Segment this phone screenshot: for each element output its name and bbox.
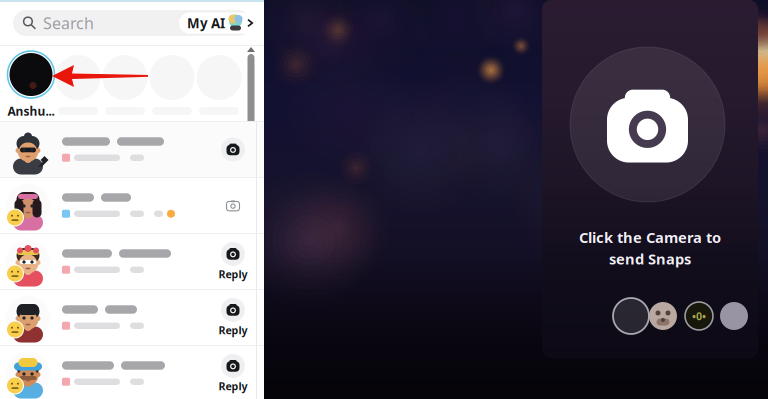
button[interactable]: Reply [0,234,264,289]
button[interactable]: Reply with a snap [218,298,248,337]
staticText: Reply [218,379,247,393]
button[interactable]: Send a snap [218,193,248,217]
button[interactable]: Lens 3 [720,302,748,330]
staticText: Anshu... [7,103,54,119]
button[interactable]: My AI [179,12,260,33]
button[interactable]: Open camera [570,47,725,202]
staticText: •0• [692,309,706,323]
button[interactable]: Search [13,10,163,36]
button[interactable]: Reply with a snap [218,354,248,393]
staticText: Reply [218,267,247,281]
button[interactable]: Reply with a snap [218,242,248,281]
button[interactable]: Reply [0,290,264,345]
button[interactable]: Reply [0,346,264,399]
button[interactable]: Lens 2 [684,301,714,331]
button[interactable]: Anshu... [5,51,57,119]
staticText: Search [43,12,94,34]
button[interactable]: Lens 1 [648,301,678,331]
staticText: send Snaps [609,249,691,268]
staticText: Click the Camera to [579,227,721,247]
button[interactable] [0,178,264,233]
button[interactable]: Take a snap [612,297,650,335]
staticText: My AI [187,14,225,32]
button[interactable]: Send a snap [218,137,248,161]
staticText: Reply [218,323,247,337]
button[interactable] [0,122,264,177]
